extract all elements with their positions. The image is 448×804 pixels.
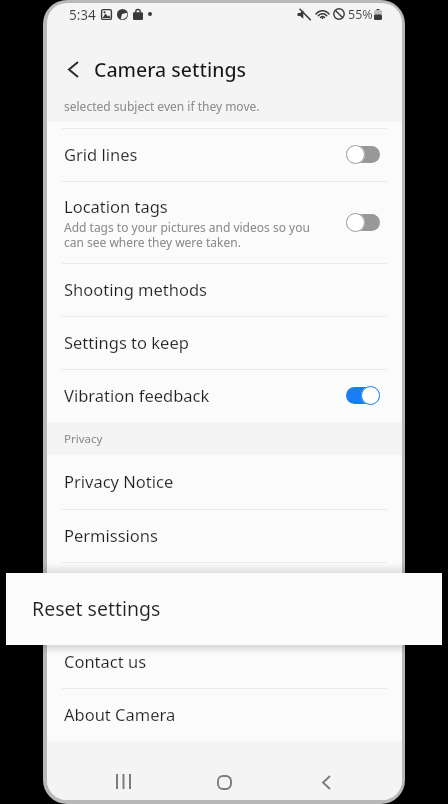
staticText: Vibration feedback [64, 384, 210, 406]
button[interactable]: Back [304, 760, 348, 800]
staticText: Contact us [64, 650, 147, 672]
button[interactable]: Grid lines [47, 128, 402, 181]
button[interactable]: Privacy Notice [47, 455, 402, 509]
button[interactable]: Contact us [47, 635, 402, 688]
button[interactable]: Recent apps [101, 759, 145, 800]
staticText: Settings to keep [64, 331, 189, 353]
button[interactable]: Home [202, 760, 246, 800]
staticText: Grid lines [64, 143, 138, 165]
staticText: Reset settings [64, 587, 173, 609]
button[interactable]: Reset settings [47, 562, 402, 635]
staticText: Add tags to your pictures and videos so … [64, 219, 310, 250]
staticText: Reset settings [32, 595, 161, 622]
button[interactable]: Settings to keep [47, 316, 402, 369]
button[interactable]: Switch on [346, 386, 380, 405]
button[interactable]: Switch off [346, 213, 380, 232]
button[interactable]: About Camera [47, 688, 402, 741]
button[interactable]: Location tags [47, 181, 402, 263]
staticText: Shooting methods [64, 278, 207, 300]
staticText: 55% [348, 6, 373, 22]
button[interactable]: Navigate up [51, 47, 95, 91]
staticText: Permissions [64, 524, 158, 546]
button[interactable]: Permissions [47, 509, 402, 562]
staticText: 5:34 [69, 6, 96, 22]
staticText: selected subject even if they move. [64, 98, 260, 114]
staticText: About Camera [64, 703, 176, 725]
button[interactable]: Reset settings [6, 573, 442, 645]
staticText: Location tags [64, 195, 168, 217]
button[interactable]: Vibration feedback [47, 369, 402, 422]
staticText: Privacy [64, 431, 103, 447]
staticText: Privacy Notice [64, 470, 174, 492]
button[interactable]: Switch off [346, 145, 380, 164]
staticText: Camera settings [94, 56, 246, 83]
button[interactable]: Shooting methods [47, 263, 402, 316]
